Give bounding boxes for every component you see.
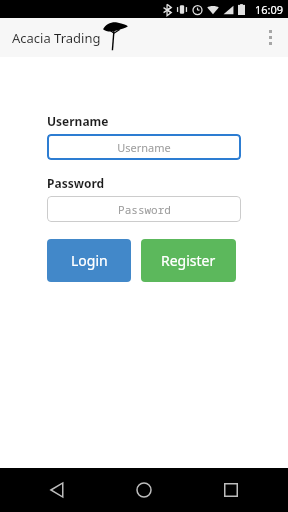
button[interactable]: Recent apps	[201, 468, 261, 512]
button[interactable]: Username	[47, 134, 241, 160]
staticText: Password	[47, 175, 105, 191]
staticText: Username	[117, 140, 171, 155]
button[interactable]: Home	[114, 468, 174, 512]
button[interactable]: Register	[141, 239, 236, 282]
button[interactable]: Password	[47, 196, 241, 222]
staticText: 16:09	[255, 2, 284, 17]
staticText: Username	[47, 113, 109, 129]
staticText: Acacia Trading	[12, 29, 101, 47]
button[interactable]: Login	[47, 239, 131, 282]
staticText: Register	[161, 251, 216, 270]
button[interactable]: Back	[27, 468, 87, 512]
staticText: Login	[71, 251, 108, 270]
button[interactable]: More options	[252, 18, 288, 57]
staticText: Password	[118, 202, 171, 217]
